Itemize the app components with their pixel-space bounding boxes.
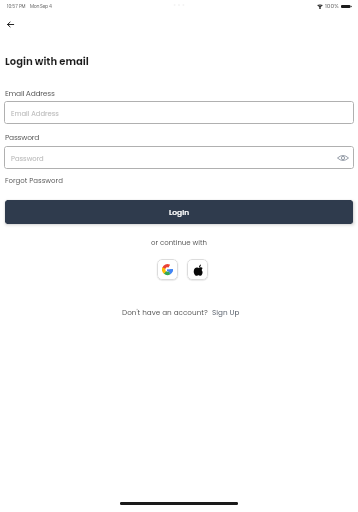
staticText: Password [11, 154, 44, 164]
staticText: Password [5, 132, 40, 142]
staticText: 100% [325, 2, 339, 10]
staticText: Email Address [11, 109, 59, 119]
staticText: Mon Sep 4 [30, 3, 52, 9]
staticText: 10:57 PM [7, 3, 26, 9]
staticText: Login with email [5, 54, 89, 68]
button[interactable]: Email Address [4, 101, 354, 124]
button[interactable]: Sign Up [212, 307, 240, 317]
button[interactable]: Login [5, 200, 353, 224]
button[interactable]: Show password [335, 150, 351, 166]
button[interactable]: Password [4, 146, 354, 169]
staticText: Don't have an account? [122, 307, 208, 317]
staticText: Login [169, 207, 190, 217]
button[interactable]: Back [0, 14, 20, 34]
staticText: Email Address [5, 88, 55, 98]
staticText: or continue with [0, 238, 358, 248]
button[interactable]: Sign in with Apple [187, 259, 208, 280]
button[interactable]: Forgot Password [5, 176, 63, 186]
button[interactable]: Sign in with Google [157, 259, 178, 280]
